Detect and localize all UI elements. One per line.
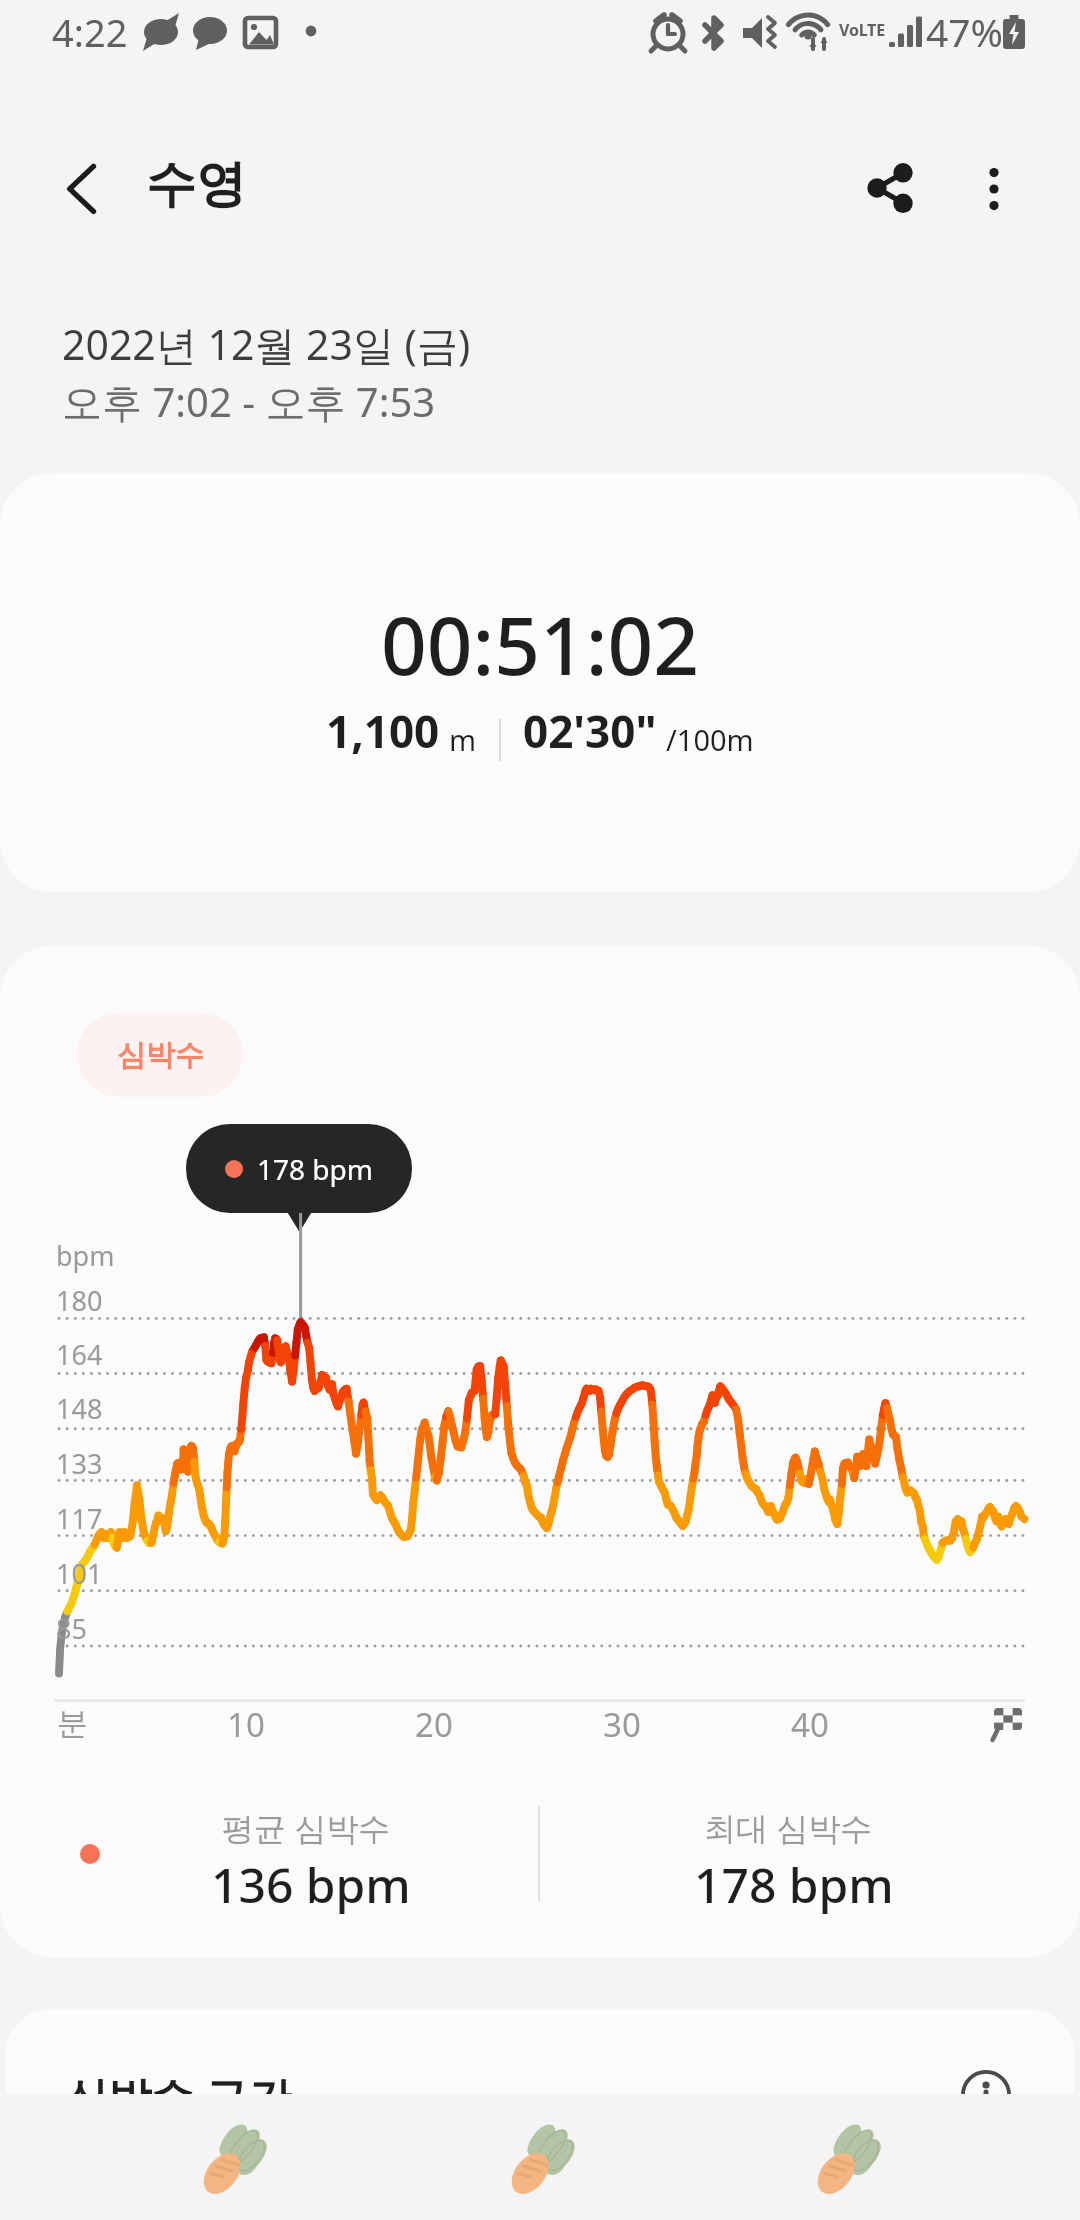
button[interactable]: 심박수 구간 [5,2009,1075,2220]
button[interactable]: 00:51:02 [0,473,1080,892]
staticText: 4:22 [52,6,128,58]
staticText: bpm [56,1237,115,1274]
button[interactable]: Home [478,2099,602,2220]
button[interactable]: Back [36,128,160,252]
staticText: 117 [56,1500,103,1537]
staticText: 178 bpm [694,1852,894,1917]
staticText: 2022년 12월 23일 (금) [62,316,471,372]
staticText: 02'30" [523,701,657,761]
staticText: /100m [666,720,754,759]
staticText: 00:51:02 [381,589,700,698]
button[interactable]: Back [784,2099,908,2220]
staticText: 심박수 구간 [65,2067,292,2126]
staticText: 30 [603,1702,641,1747]
button[interactable]: Information [961,2070,1011,2120]
staticText: 20 [415,1702,453,1747]
staticText: 133 [56,1445,103,1482]
staticText: 최대 심박수 [704,1806,873,1850]
staticText: 1,100 [326,701,440,761]
staticText: 분 [57,1704,88,1743]
staticText: 수영 [146,153,246,216]
staticText: 180 [56,1282,103,1319]
staticText: 10 [227,1702,265,1747]
staticText: 47% [926,5,1004,58]
staticText: VoLTE [839,19,885,41]
staticText: 148 [56,1390,103,1427]
staticText: 85 [56,1610,87,1647]
staticText: 평균 심박수 [222,1806,391,1850]
staticText: 178 bpm [257,1150,373,1188]
staticText: 164 [56,1336,103,1373]
button[interactable]: Recent apps [170,2099,294,2220]
staticText: m [449,720,477,759]
staticText: 심박수 [117,1037,204,1074]
button[interactable]: Share [830,130,950,250]
button[interactable]: 심박수 [77,1013,243,1097]
staticText: 136 bpm [211,1852,411,1917]
staticText: 오후 7:02 - 오후 7:53 [62,374,436,429]
staticText: 40 [791,1702,829,1747]
button[interactable]: More options [940,129,1050,239]
button[interactable]: 심박수 [0,946,1080,1957]
staticText: 101 [56,1555,103,1592]
